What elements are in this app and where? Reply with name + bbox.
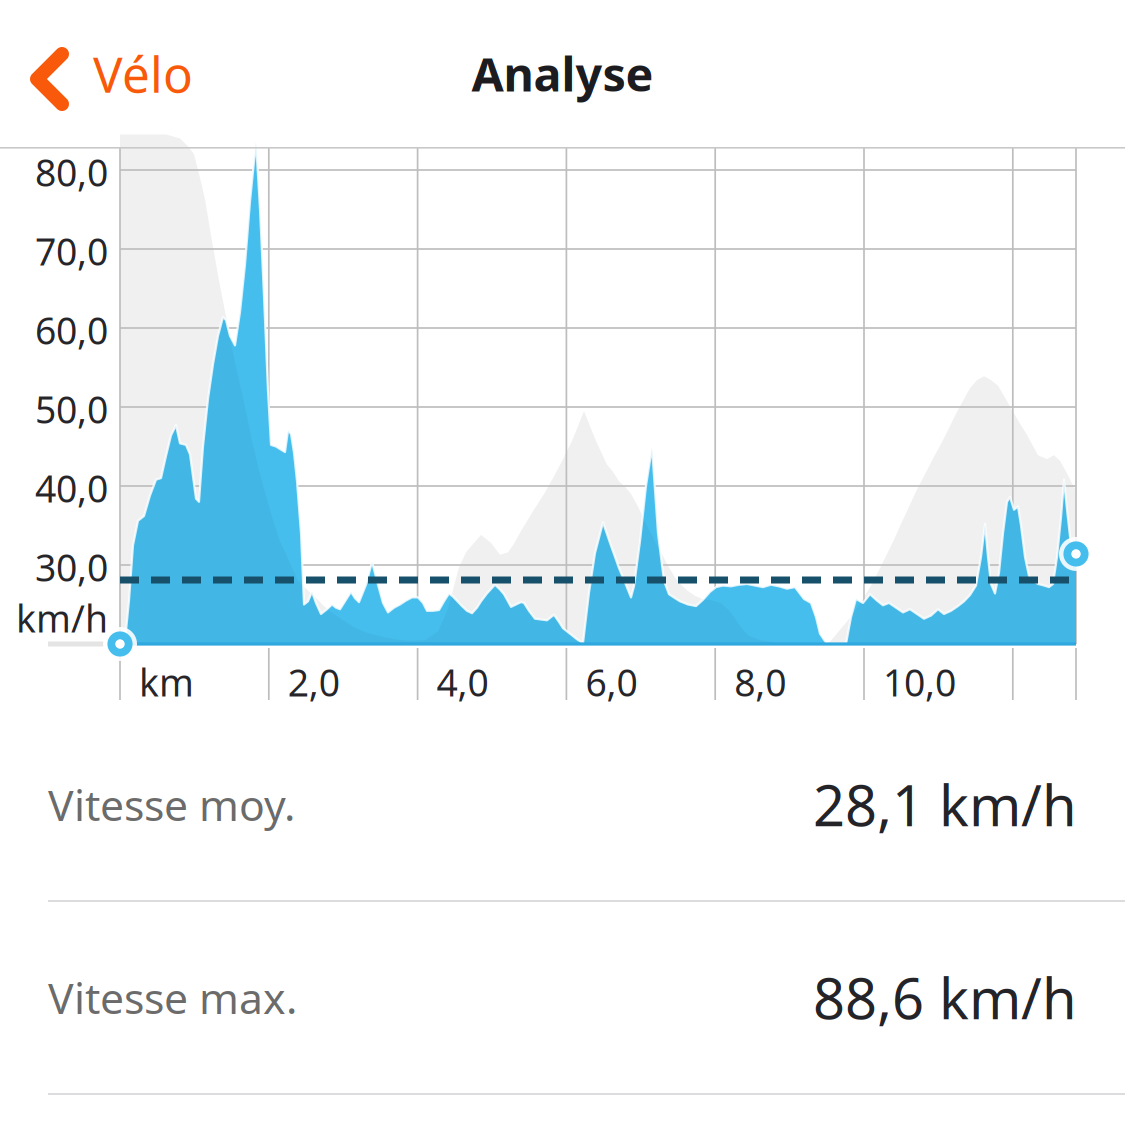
button[interactable]: Vélo <box>0 0 233 147</box>
button[interactable]: Vitesse max. <box>0 902 1125 1093</box>
staticText: 6,0 <box>585 657 637 707</box>
staticText: 2,0 <box>288 657 340 707</box>
staticText: Vélo <box>93 41 193 106</box>
staticText: 10,0 <box>883 657 956 707</box>
staticText: 40,0 <box>35 463 108 513</box>
staticText: 88,6 km/h <box>813 960 1077 1035</box>
staticText: Vitesse moy. <box>48 776 295 833</box>
staticText: 50,0 <box>35 384 108 434</box>
staticText: km/h <box>16 593 108 643</box>
staticText: Analyse <box>471 42 653 104</box>
staticText: 30,0 <box>35 542 108 592</box>
button[interactable]: Vitesse moy. <box>0 709 1125 900</box>
staticText: 80,0 <box>35 147 108 197</box>
staticText: 60,0 <box>35 305 108 355</box>
staticText: Vitesse max. <box>48 969 297 1026</box>
staticText: km <box>139 657 194 707</box>
staticText: 4,0 <box>437 657 489 707</box>
staticText: 28,1 km/h <box>813 767 1077 842</box>
staticText: 70,0 <box>35 226 108 276</box>
staticText: 8,0 <box>734 657 786 707</box>
